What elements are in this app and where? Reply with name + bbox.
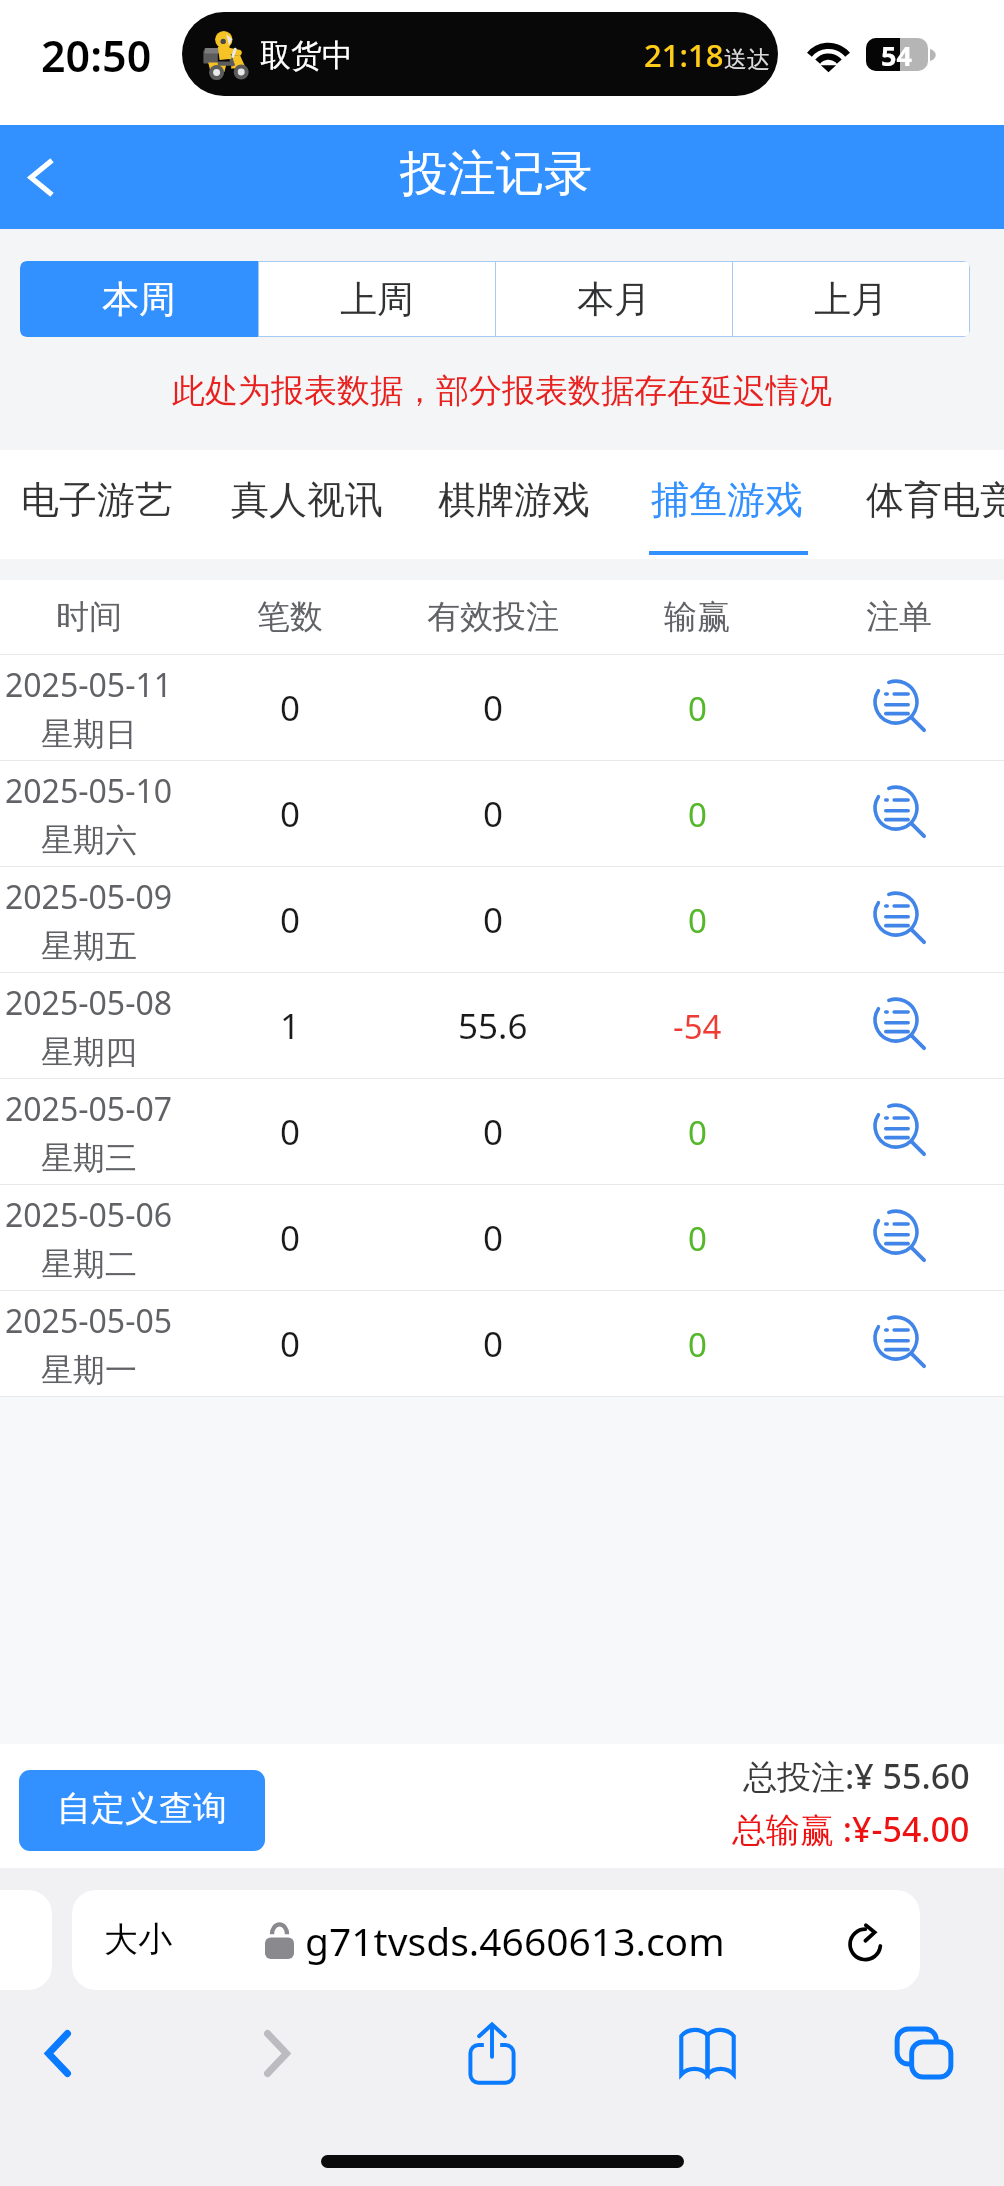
staticText: 自定义查询 xyxy=(57,1787,227,1830)
button[interactable]: 2025-05-07 xyxy=(0,1079,1004,1185)
staticText: 21:18 xyxy=(644,34,724,76)
button[interactable]: View bet details xyxy=(799,1291,999,1397)
staticText: 0 xyxy=(280,790,301,838)
button[interactable]: 自定义查询 xyxy=(19,1770,265,1851)
staticText: 送达 xyxy=(724,45,770,74)
button[interactable]: 2025-05-10 xyxy=(0,761,1004,867)
button[interactable]: 上月 xyxy=(733,262,969,336)
staticText: 0 xyxy=(688,1110,707,1155)
button[interactable]: Bookmarks xyxy=(667,2013,747,2093)
staticText: 0 xyxy=(280,1108,301,1156)
button[interactable]: View bet details xyxy=(799,655,999,761)
staticText: 20:50 xyxy=(41,26,152,85)
staticText: 捕鱼游戏 xyxy=(651,476,803,524)
staticText: 时间 xyxy=(56,596,122,638)
staticText: 本周 xyxy=(102,276,176,323)
staticText: 棋牌游戏 xyxy=(438,476,590,524)
staticText: 有效投注 xyxy=(427,596,559,638)
staticText: 0 xyxy=(483,1108,504,1156)
button[interactable]: 本周 xyxy=(21,262,258,336)
button[interactable]: View bet details xyxy=(799,1185,999,1291)
staticText: 星期四 xyxy=(41,1032,137,1072)
staticText: 2025-05-05 xyxy=(5,1299,173,1343)
staticText: 2025-05-11 xyxy=(5,663,173,707)
staticText: 星期二 xyxy=(41,1244,137,1284)
button[interactable]: 2025-05-11 xyxy=(0,655,1004,761)
staticText: 0 xyxy=(280,684,301,732)
staticText: 0 xyxy=(688,1322,707,1367)
staticText: 55.6 xyxy=(458,1002,528,1050)
staticText: 电子游艺 xyxy=(21,476,173,524)
staticText: 体育电竞 xyxy=(866,476,1004,524)
button[interactable]: Back xyxy=(0,125,80,229)
staticText: 星期日 xyxy=(41,714,137,754)
button[interactable]: Back xyxy=(18,2013,98,2093)
staticText: 上周 xyxy=(340,276,414,323)
staticText: 0 xyxy=(688,1216,707,1261)
staticText: 本月 xyxy=(577,276,651,323)
staticText: 此处为报表数据，部分报表数据存在延迟情况 xyxy=(0,370,1004,412)
button[interactable]: 2025-05-09 xyxy=(0,867,1004,973)
staticText: 输赢 xyxy=(664,596,730,638)
staticText: 投注记录 xyxy=(400,144,592,204)
button[interactable]: 大小 xyxy=(72,1890,920,1990)
staticText: 星期一 xyxy=(41,1350,137,1390)
button[interactable]: 棋牌游戏 xyxy=(409,450,619,549)
staticText: 大小 xyxy=(104,1918,172,1961)
staticText: 54 xyxy=(881,38,912,70)
staticText: 0 xyxy=(483,1214,504,1262)
button[interactable]: 上周 xyxy=(259,262,495,336)
staticText: 本周 xyxy=(103,276,177,323)
staticText: 取货中 xyxy=(260,36,353,75)
staticText: 0 xyxy=(688,898,707,943)
button[interactable]: View bet details xyxy=(799,761,999,867)
button[interactable]: Forward xyxy=(237,2013,317,2093)
button[interactable]: 本月 xyxy=(496,262,732,336)
staticText: 0 xyxy=(688,792,707,837)
staticText: 真人视讯 xyxy=(231,476,383,524)
staticText: 0 xyxy=(280,896,301,944)
button[interactable]: View bet details xyxy=(799,867,999,973)
staticText: 1 xyxy=(280,1002,301,1050)
staticText: 总投注:¥ 55.60 xyxy=(743,1753,970,1799)
button[interactable]: 2025-05-08 xyxy=(0,973,1004,1079)
staticText: 2025-05-06 xyxy=(5,1193,173,1237)
button[interactable]: 体育电竞 xyxy=(837,450,1004,549)
button[interactable]: 2025-05-06 xyxy=(0,1185,1004,1291)
button[interactable]: Tabs xyxy=(884,2013,964,2093)
staticText: 0 xyxy=(280,1214,301,1262)
staticText: 0 xyxy=(483,1320,504,1368)
staticText: 2025-05-09 xyxy=(5,875,173,919)
staticText: 星期三 xyxy=(41,1138,137,1178)
button[interactable]: 本周 xyxy=(20,261,258,337)
staticText: 0 xyxy=(688,686,707,731)
staticText: 上月 xyxy=(814,276,888,323)
staticText: 0 xyxy=(483,790,504,838)
staticText: 2025-05-08 xyxy=(5,981,173,1025)
staticText: 总输赢 :¥-54.00 xyxy=(732,1806,970,1852)
button[interactable]: View bet details xyxy=(799,1079,999,1185)
button[interactable]: 捕鱼游戏 xyxy=(622,450,832,549)
staticText: 星期六 xyxy=(41,820,137,860)
staticText: 星期五 xyxy=(41,926,137,966)
staticText: 2025-05-07 xyxy=(5,1087,173,1131)
staticText: 2025-05-10 xyxy=(5,769,173,813)
button[interactable]: 真人视讯 xyxy=(202,450,412,549)
staticText: 0 xyxy=(483,896,504,944)
staticText: 0 xyxy=(483,684,504,732)
staticText: 笔数 xyxy=(257,596,323,638)
button[interactable]: Reload xyxy=(842,1915,892,1965)
button[interactable]: 电子游艺 xyxy=(0,450,202,549)
button[interactable]: View bet details xyxy=(799,973,999,1079)
button[interactable]: Share xyxy=(452,2013,532,2093)
staticText: g71tvsds.4660613.com xyxy=(305,1914,725,1967)
staticText: -54 xyxy=(673,1004,722,1049)
staticText: 注单 xyxy=(866,596,932,638)
staticText: 0 xyxy=(280,1320,301,1368)
button[interactable]: 2025-05-05 xyxy=(0,1291,1004,1397)
